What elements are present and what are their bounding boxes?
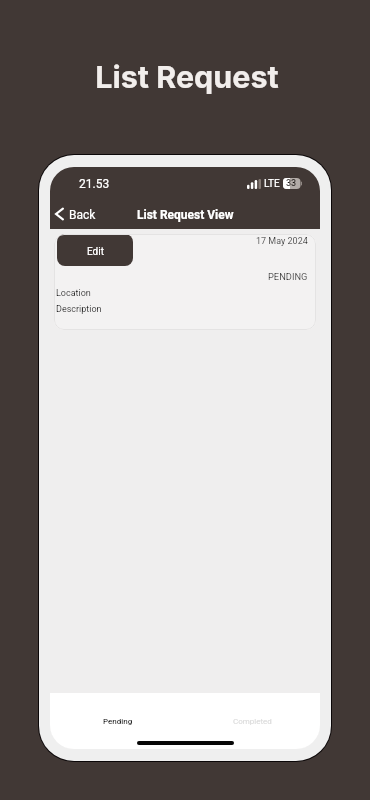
button[interactable]: Completed: [185, 693, 320, 749]
staticText: 21.53: [79, 177, 110, 191]
staticText: 17 May 2024: [256, 236, 308, 247]
staticText: PENDING: [268, 271, 308, 282]
button[interactable]: Edit: [57, 234, 133, 266]
staticText: Edit: [87, 246, 104, 258]
other: Back: [55, 207, 64, 221]
staticText: Pending: [103, 717, 133, 726]
button[interactable]: Back: [55, 208, 96, 222]
staticText: List Request: [2, 58, 370, 95]
staticText: Completed: [233, 717, 272, 726]
staticText: Back: [69, 208, 96, 222]
staticText: List Request View: [137, 208, 234, 222]
staticText: 33: [286, 178, 297, 189]
button[interactable]: Pending: [50, 693, 185, 749]
staticText: LTE: [264, 178, 280, 190]
staticText: Location: [56, 288, 91, 299]
staticText: Description: [56, 304, 102, 315]
